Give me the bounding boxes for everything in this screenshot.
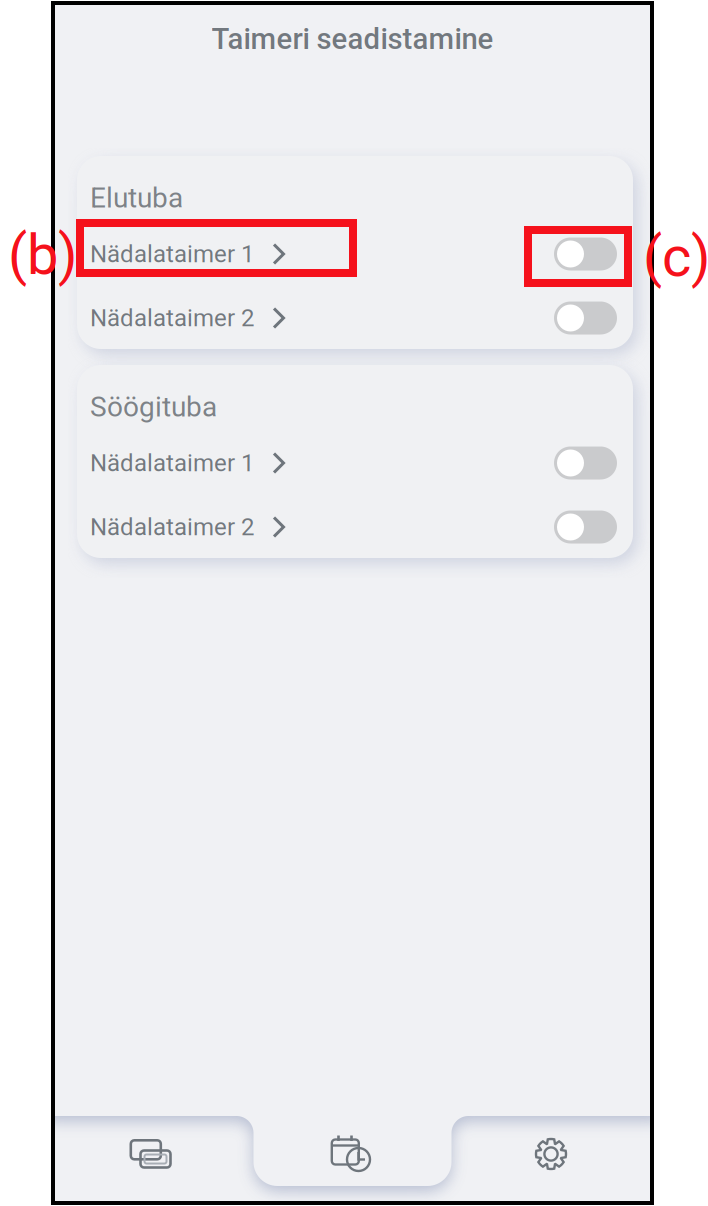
button[interactable]: Heating (61, 1124, 241, 1184)
button[interactable]: Timers (261, 1123, 441, 1183)
staticText: (c) (643, 224, 708, 290)
button[interactable]: Nädalataimer 1 (90, 441, 298, 485)
staticText: Nädalataimer 2 (90, 513, 254, 541)
button[interactable]: Enable Nädalataimer 2 (554, 296, 617, 340)
staticText: Söögituba (90, 391, 217, 423)
staticText: Elutuba (90, 182, 183, 214)
staticText: Nädalataimer 1 (90, 240, 254, 268)
button[interactable]: Enable Nädalataimer 2 (554, 505, 617, 549)
button[interactable]: Nädalataimer 1 (90, 232, 298, 276)
button[interactable]: Nädalataimer 2 (90, 505, 298, 549)
button[interactable]: Nädalataimer 2 (90, 296, 298, 340)
staticText: Taimeri seadistamine (211, 22, 493, 56)
staticText: Nädalataimer 1 (90, 449, 254, 477)
staticText: Nädalataimer 2 (90, 304, 254, 332)
button[interactable]: Enable Nädalataimer 1 (554, 441, 617, 485)
button[interactable]: Enable Nädalataimer 1 (554, 232, 617, 276)
button[interactable]: Settings (461, 1124, 641, 1184)
staticText: (b) (8, 222, 77, 288)
